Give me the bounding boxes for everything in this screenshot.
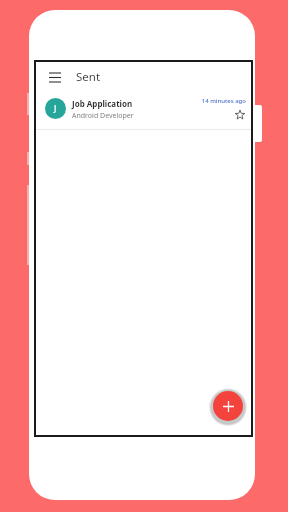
button[interactable]: J <box>36 91 251 129</box>
staticText: Job Application <box>72 98 133 109</box>
button[interactable]: Open navigation drawer <box>45 67 65 87</box>
staticText: J <box>54 103 57 115</box>
button[interactable]: Compose new message <box>213 391 243 421</box>
staticText: Android Developer <box>72 111 134 121</box>
button[interactable]: Star message <box>233 108 246 121</box>
staticText: 14 minutes ago <box>201 97 246 105</box>
staticText: Sent <box>76 69 101 85</box>
